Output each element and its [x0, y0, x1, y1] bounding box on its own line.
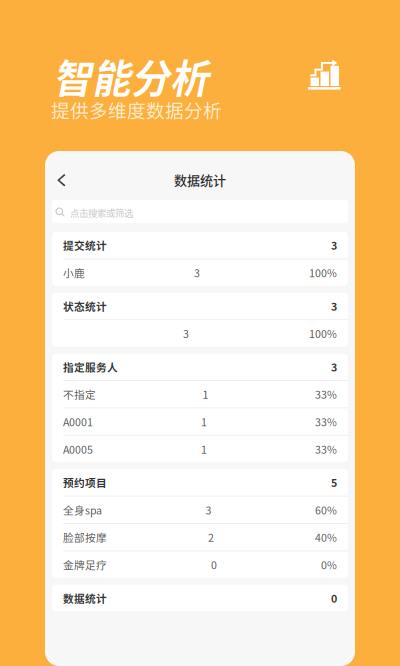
staticText: 点击搜索或筛选: [70, 206, 133, 219]
staticText: 100%: [309, 326, 337, 341]
staticText: 不指定: [63, 386, 96, 402]
staticText: 0%: [321, 557, 337, 572]
staticText: 预约项目: [63, 475, 107, 490]
staticText: 40%: [315, 529, 337, 545]
staticText: 100%: [309, 265, 337, 280]
staticText: 3: [194, 265, 200, 280]
staticText: 3: [183, 326, 189, 341]
staticText: A0001: [63, 414, 93, 429]
staticText: 3: [331, 298, 337, 314]
staticText: 提交统计: [63, 237, 107, 253]
staticText: 1: [201, 414, 207, 429]
button[interactable]: 预约项目: [52, 469, 348, 496]
staticText: 数据统计: [174, 170, 226, 189]
staticText: 脸部按摩: [63, 529, 107, 545]
button[interactable]: Back: [45, 167, 83, 193]
button[interactable]: 点击搜索或筛选: [52, 200, 348, 223]
staticText: 提供多维度数据分析: [51, 96, 222, 123]
staticText: 智能分析: [53, 48, 209, 104]
staticText: 全身spa: [63, 502, 102, 517]
staticText: 5: [331, 475, 337, 490]
staticText: 3: [331, 359, 337, 374]
staticText: 3: [205, 502, 211, 517]
staticText: 金牌足疗: [63, 557, 107, 572]
staticText: 小鹿: [63, 265, 85, 280]
staticText: 2: [208, 529, 214, 545]
staticText: A0005: [63, 441, 93, 457]
staticText: 数据统计: [63, 590, 107, 606]
button[interactable]: 状态统计: [52, 293, 348, 319]
staticText: 0: [211, 557, 217, 572]
staticText: 1: [202, 386, 208, 402]
staticText: 33%: [315, 441, 337, 457]
staticText: 指定服务人: [63, 359, 118, 374]
button[interactable]: 提交统计: [52, 232, 348, 258]
staticText: 33%: [315, 386, 337, 402]
staticText: 1: [201, 441, 207, 457]
staticText: 33%: [315, 414, 337, 429]
button[interactable]: 数据统计: [52, 585, 348, 611]
staticText: 状态统计: [63, 298, 107, 314]
button[interactable]: 指定服务人: [52, 354, 348, 380]
staticText: 0: [331, 590, 337, 606]
staticText: 60%: [315, 502, 337, 517]
staticText: 3: [331, 237, 337, 253]
